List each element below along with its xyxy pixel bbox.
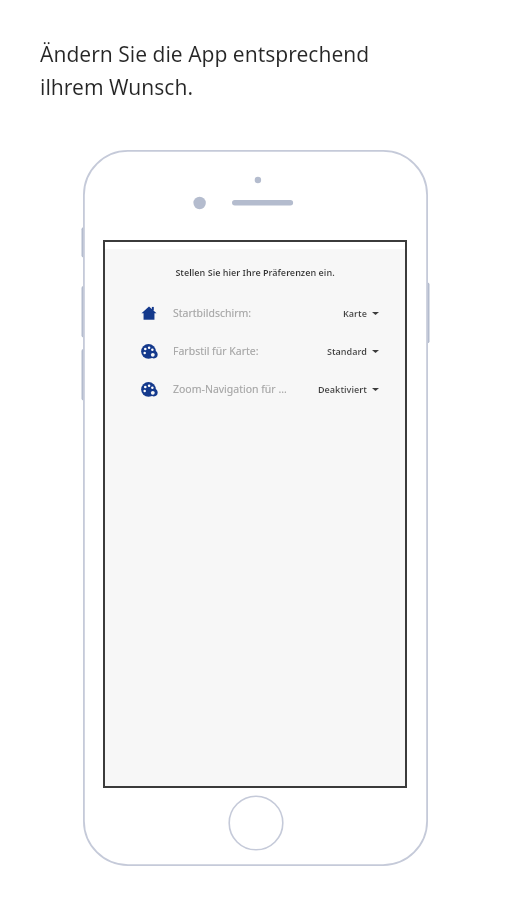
staticText: ilhrem Wunsch. [40,73,194,102]
staticText: Startbildschirm: [173,306,343,320]
button[interactable]: Startbildschirm: [105,294,405,332]
staticText: Stellen Sie hier Ihre Präferenzen ein. [105,266,405,278]
other: Auswählen [372,310,379,317]
other: Auswählen [372,348,379,355]
other: Home [228,795,284,851]
staticText: Zoom-Navigation für ... [173,382,318,396]
staticText: Farbstil für Karte: [173,344,327,358]
staticText: Ändern Sie die App entsprechend [40,40,370,69]
button[interactable]: Zoom-Navigation für ... [105,370,405,408]
staticText: Deaktiviert [318,383,367,395]
staticText: Karte [343,307,367,319]
other: Auswählen [372,386,379,393]
staticText: Standard [327,345,367,357]
button[interactable]: Farbstil für Karte: [105,332,405,370]
